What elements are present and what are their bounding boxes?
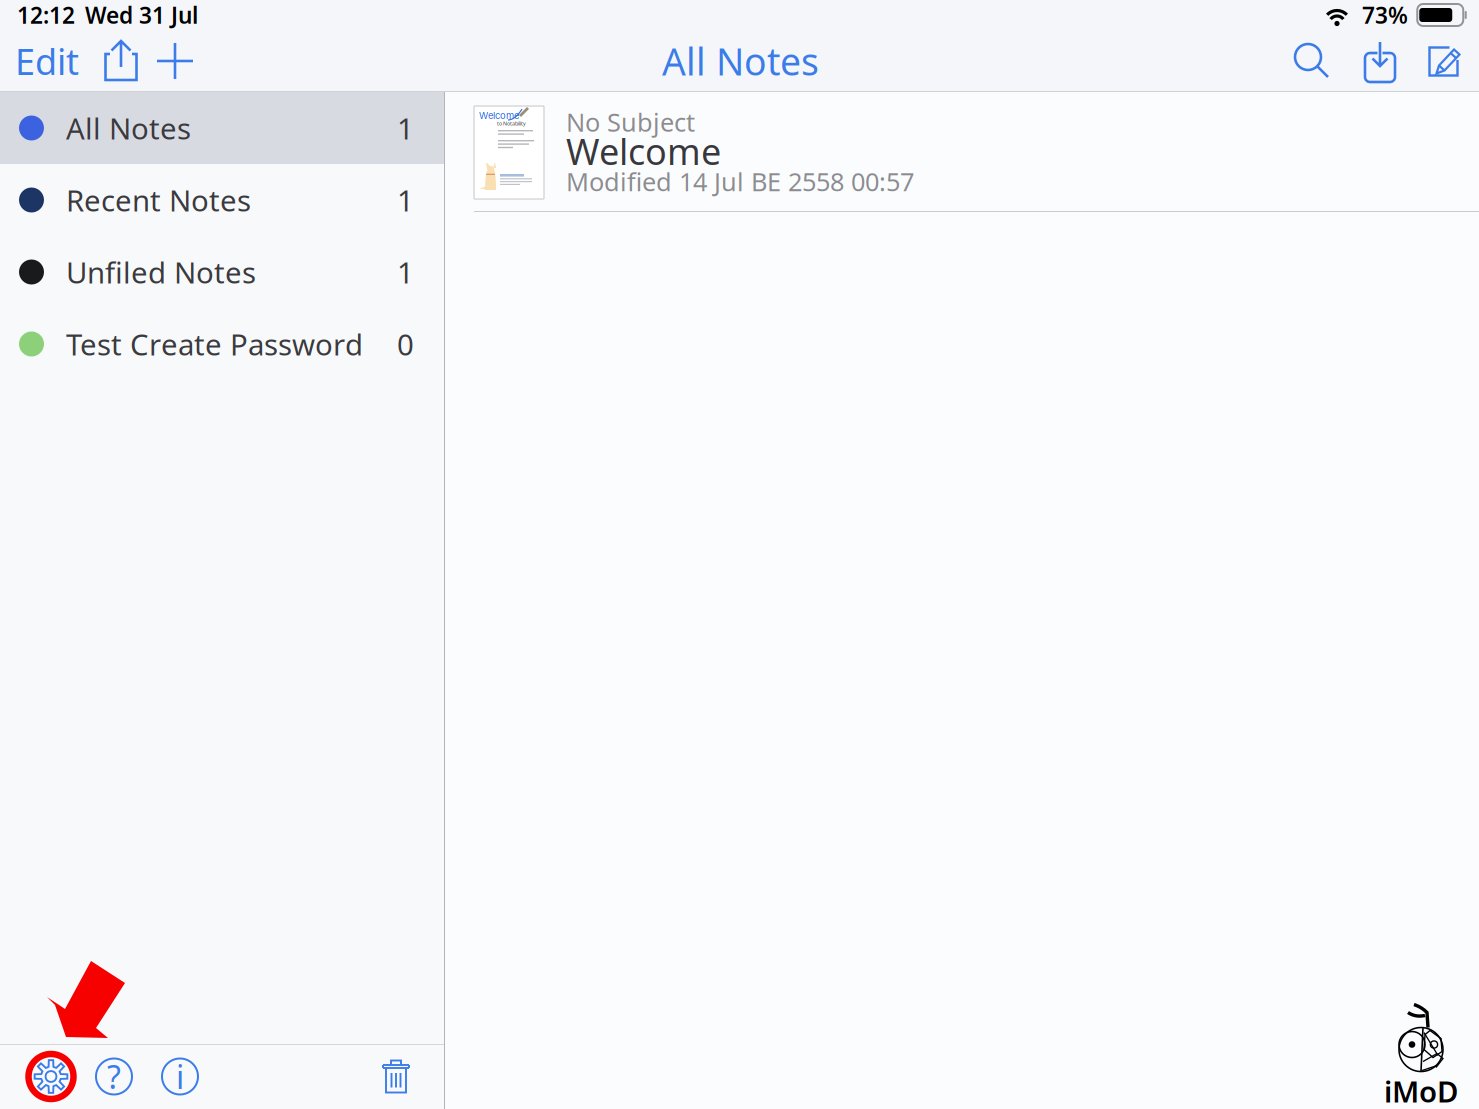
button[interactable]: Welcome bbox=[445, 92, 1479, 212]
staticText: 1 bbox=[397, 108, 414, 147]
staticText: No Subject bbox=[566, 105, 695, 139]
staticText: 1 bbox=[397, 180, 414, 219]
button[interactable]: Search bbox=[1279, 30, 1345, 92]
button[interactable]: Edit bbox=[0, 30, 94, 92]
button[interactable]: Delete bbox=[370, 1044, 422, 1108]
staticText: 73% bbox=[1362, 0, 1408, 30]
staticText: All Notes bbox=[662, 36, 819, 86]
staticText: Welcome bbox=[566, 127, 721, 175]
staticText: i bbox=[176, 1055, 184, 1098]
staticText: to Notability bbox=[497, 120, 526, 127]
staticText: Modified 14 Jul BE 2558 00:57 bbox=[566, 165, 914, 198]
staticText: All Notes bbox=[66, 108, 191, 147]
staticText: Recent Notes bbox=[66, 180, 251, 219]
staticText: 12:12 bbox=[17, 0, 75, 30]
button[interactable]: Unfiled Notes bbox=[0, 236, 444, 308]
button[interactable]: New folder bbox=[148, 30, 202, 92]
staticText: Welcome bbox=[479, 110, 519, 121]
button[interactable]: All Notes bbox=[0, 92, 444, 164]
button[interactable]: Test Create Password bbox=[0, 308, 444, 380]
staticText: 1 bbox=[397, 252, 414, 291]
staticText: Unfiled Notes bbox=[66, 252, 256, 291]
staticText: Wed 31 Jul bbox=[85, 0, 198, 30]
button[interactable]: Help bbox=[81, 1044, 147, 1108]
staticText: iMoD bbox=[1384, 1071, 1458, 1109]
staticText: 0 bbox=[397, 324, 414, 363]
button[interactable]: Settings bbox=[21, 1044, 81, 1108]
staticText: Edit bbox=[15, 37, 79, 85]
button[interactable]: Import bbox=[1345, 30, 1411, 92]
staticText: ? bbox=[107, 1055, 121, 1098]
button[interactable]: Share bbox=[94, 30, 148, 92]
staticText: Test Create Password bbox=[66, 324, 363, 363]
button[interactable]: Compose bbox=[1411, 30, 1479, 92]
button[interactable]: Recent Notes bbox=[0, 164, 444, 236]
button[interactable]: Info bbox=[147, 1044, 213, 1108]
